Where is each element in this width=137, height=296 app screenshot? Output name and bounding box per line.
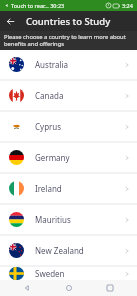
staticText: Please choose a country to learn more ab… bbox=[4, 33, 133, 48]
button[interactable]: Germany bbox=[0, 143, 137, 172]
staticText: Canada bbox=[35, 90, 64, 101]
button[interactable]: Australia bbox=[0, 50, 137, 79]
staticText: Australia bbox=[35, 59, 69, 70]
button[interactable]: Recent apps bbox=[95, 280, 125, 296]
button[interactable]: Home bbox=[54, 280, 84, 296]
button[interactable]: Back bbox=[0, 11, 20, 31]
staticText: Mauritius bbox=[35, 214, 71, 225]
button[interactable]: Ireland bbox=[0, 174, 137, 203]
staticText: Sweden bbox=[35, 268, 65, 279]
button[interactable]: Back bbox=[12, 280, 42, 296]
staticText: New Zealand bbox=[35, 245, 84, 256]
button[interactable]: New Zealand bbox=[0, 236, 137, 265]
button[interactable]: Mauritius bbox=[0, 205, 137, 234]
staticText: 3:24 bbox=[122, 2, 133, 9]
button[interactable]: Sweden bbox=[0, 267, 137, 280]
staticText: Countries to Study bbox=[26, 15, 111, 28]
button[interactable]: Cyprus bbox=[0, 112, 137, 141]
staticText: Ireland bbox=[35, 183, 62, 194]
staticText: Cyprus bbox=[35, 121, 62, 132]
staticText: Touch to rear... 30:23 bbox=[11, 2, 65, 9]
button[interactable]: Canada bbox=[0, 81, 137, 110]
staticText: Germany bbox=[35, 152, 70, 163]
